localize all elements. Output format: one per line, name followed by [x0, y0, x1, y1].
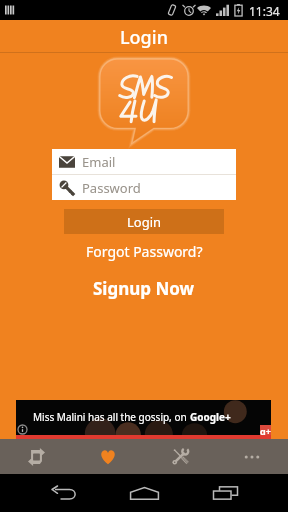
button[interactable]: Recents — [193, 474, 257, 512]
staticText: Login — [127, 213, 162, 231]
button[interactable]: Signup Now — [64, 277, 224, 299]
staticText: Forgot Password? — [86, 242, 203, 261]
staticText: Login — [120, 25, 168, 50]
button[interactable]: More — [216, 439, 288, 474]
button[interactable]: Home — [112, 474, 176, 512]
button[interactable]: Settings — [144, 439, 216, 474]
staticText: Signup Now — [93, 277, 195, 299]
button[interactable]: Login — [64, 209, 224, 234]
staticText: g+ — [260, 425, 271, 435]
staticText: Miss Malini has all the gossip, on — [33, 410, 190, 424]
button[interactable]: Favorites — [72, 439, 144, 474]
staticText: Password — [82, 179, 141, 197]
button[interactable]: Repeat — [0, 439, 72, 474]
staticText: Email — [82, 153, 116, 171]
button[interactable]: Password — [52, 175, 236, 200]
button[interactable]: Email — [52, 149, 236, 174]
staticText: 11:34 — [249, 3, 280, 19]
staticText: Google+ — [190, 410, 231, 424]
button[interactable]: Forgot Password? — [64, 241, 224, 261]
button[interactable]: Back — [32, 474, 96, 512]
